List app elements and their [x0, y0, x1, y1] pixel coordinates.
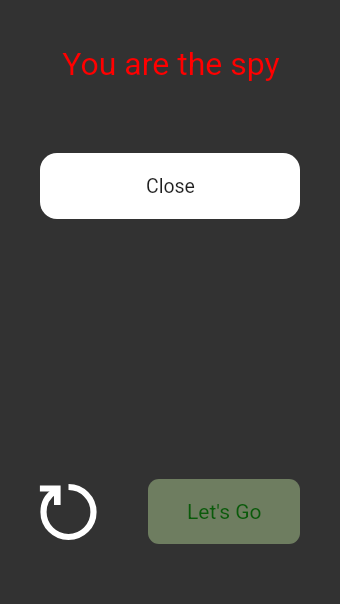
- button[interactable]: Close: [40, 153, 300, 219]
- staticText: You are the spy: [1, 45, 340, 83]
- button[interactable]: Restart: [38, 482, 100, 544]
- staticText: Let's Go: [187, 500, 262, 525]
- staticText: Close: [146, 175, 195, 198]
- button[interactable]: Let's Go: [148, 479, 300, 544]
